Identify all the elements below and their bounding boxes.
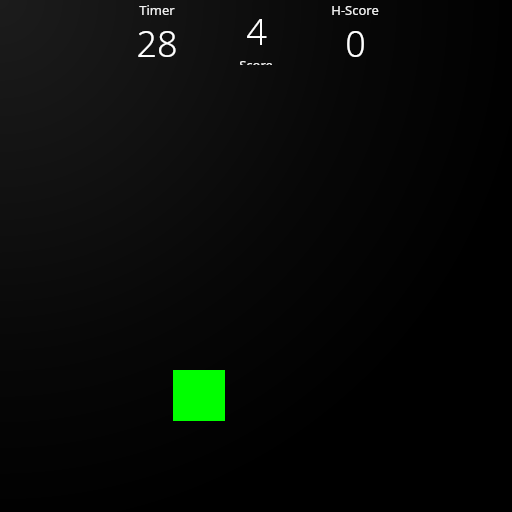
staticText: Score: [239, 56, 273, 65]
staticText: 28: [136, 19, 178, 57]
staticText: Timer: [139, 1, 175, 19]
staticText: 0: [345, 19, 366, 57]
staticText: 4: [246, 7, 267, 56]
button[interactable]: Timer: [117, 1, 197, 57]
button[interactable]: 4: [216, 7, 296, 65]
button[interactable]: H-Score: [315, 1, 395, 57]
staticText: H-Score: [331, 1, 379, 19]
